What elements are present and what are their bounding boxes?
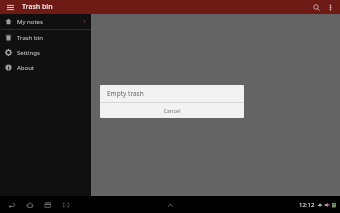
button[interactable]: Settings — [0, 45, 91, 60]
staticText: 12:12 — [299, 201, 315, 209]
button[interactable]: Recent apps — [41, 198, 54, 211]
button[interactable]: My notes — [0, 14, 91, 29]
button[interactable]: More options — [325, 2, 336, 13]
staticText: Settings — [17, 49, 40, 57]
staticText: Trash bin — [22, 2, 53, 12]
button[interactable]: Screenshot — [59, 198, 72, 211]
button[interactable]: Search — [310, 1, 323, 14]
button[interactable]: About — [0, 60, 91, 75]
button[interactable]: Show notifications — [163, 198, 177, 212]
button[interactable]: Trash bin — [0, 30, 91, 45]
staticText: About — [17, 64, 35, 72]
staticText: My notes — [17, 18, 43, 26]
button[interactable]: Back — [5, 198, 18, 211]
staticText: Empty trash — [107, 89, 144, 98]
button[interactable]: Cancel — [100, 103, 244, 118]
staticText: Cancel — [163, 107, 181, 114]
button[interactable]: Home — [23, 198, 36, 211]
button[interactable]: Open navigation drawer — [4, 1, 16, 13]
staticText: Trash bin — [17, 34, 43, 42]
